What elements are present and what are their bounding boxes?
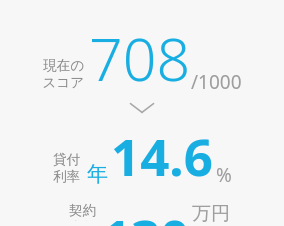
button[interactable]: Expand details (129, 101, 155, 115)
button[interactable]: 契約 (55, 202, 230, 226)
button[interactable]: 貸付 (53, 121, 232, 190)
button[interactable]: 現在の (40, 18, 244, 98)
staticText: /1000 (191, 69, 242, 95)
staticText: 14.6 (111, 121, 213, 190)
staticText: 万円 (192, 202, 230, 224)
staticText: 130 (102, 202, 190, 226)
staticText: % (216, 162, 232, 188)
staticText: 現在の (43, 57, 84, 74)
staticText: 708 (89, 18, 191, 98)
staticText: 契約 (69, 202, 96, 219)
staticText: 利率 (53, 168, 80, 185)
staticText: スコア (42, 74, 84, 91)
staticText: 年 (87, 161, 108, 187)
staticText: 貸付 (53, 151, 80, 168)
